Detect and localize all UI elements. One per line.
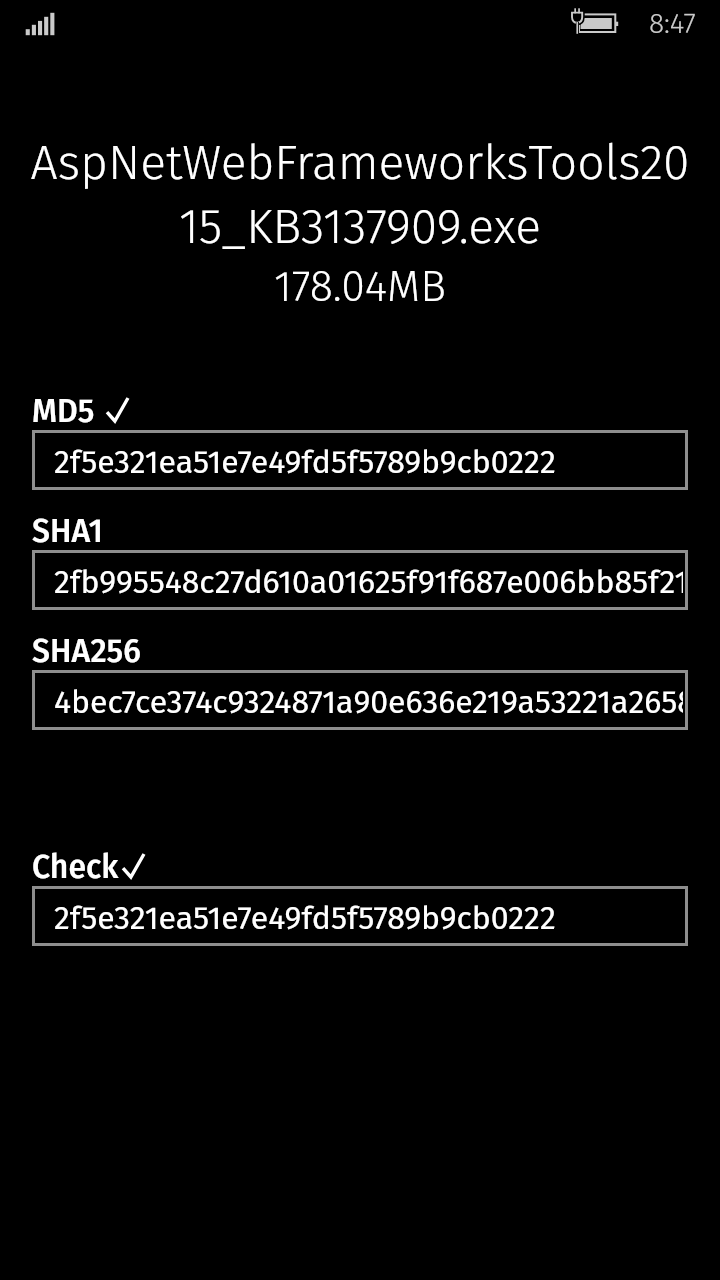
staticText: MD5 <box>32 392 95 430</box>
staticText: SHA256 <box>32 632 141 670</box>
other: Verified <box>107 398 128 421</box>
staticText: 178.04MB <box>0 261 720 313</box>
staticText: 2f5e321ea51e7e49fd5f5789b9cb0222 <box>54 443 556 481</box>
staticText: 2f5e321ea51e7e49fd5f5789b9cb0222 <box>54 899 556 937</box>
staticText: 2fb995548c27d610a01625f91f687e006bb85f21 <box>54 563 683 601</box>
other: Battery charging <box>570 4 622 38</box>
button[interactable]: 4bec7ce374c9324871a90e636e219a53221a2658… <box>32 670 688 730</box>
other: Signal strength <box>22 4 62 44</box>
staticText: SHA1 <box>32 512 103 550</box>
staticText: 8:47 <box>649 7 696 41</box>
other: Verified <box>123 854 144 877</box>
button[interactable]: 2fb995548c27d610a01625f91f687e006bb85f21 <box>32 550 688 610</box>
button[interactable]: 2f5e321ea51e7e49fd5f5789b9cb0222 <box>32 430 688 490</box>
staticText: AspNetWebFrameworksTools20 <box>0 134 720 192</box>
staticText: Check <box>32 848 119 886</box>
button[interactable]: 2f5e321ea51e7e49fd5f5789b9cb0222 <box>32 886 688 946</box>
staticText: 15_KB3137909.exe <box>0 198 720 256</box>
staticText: 4bec7ce374c9324871a90e636e219a53221a2658… <box>54 683 683 721</box>
